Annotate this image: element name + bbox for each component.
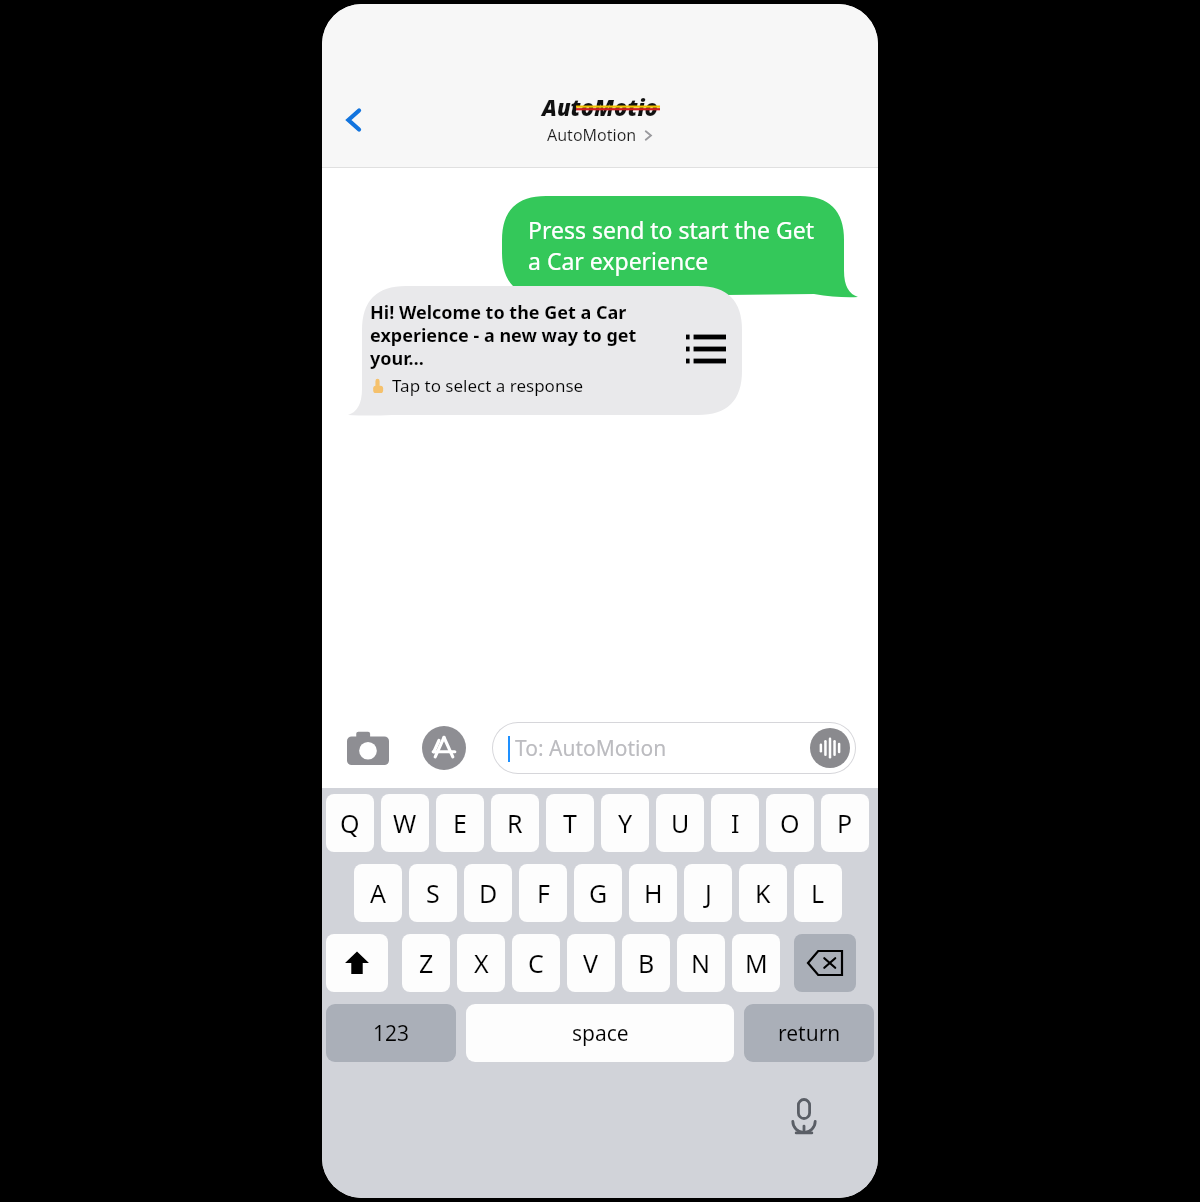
staticText: I <box>731 806 740 840</box>
button[interactable]: B <box>622 934 670 992</box>
button[interactable]: M <box>732 934 780 992</box>
staticText: O <box>780 806 800 840</box>
button[interactable]: Apps <box>420 724 468 772</box>
staticText: C <box>528 946 544 980</box>
staticText: U <box>671 806 690 840</box>
staticText: return <box>778 1019 841 1048</box>
button[interactable]: 123 <box>326 1004 456 1062</box>
staticText: S <box>426 876 440 910</box>
staticText: Press send to start the Get a Car experi… <box>528 214 828 277</box>
staticText: Tap to select a response <box>392 374 584 397</box>
button[interactable]: N <box>677 934 725 992</box>
button[interactable]: R <box>491 794 539 852</box>
staticText: H <box>644 876 663 910</box>
button[interactable]: Camera <box>344 724 392 772</box>
button[interactable]: O <box>766 794 814 852</box>
button[interactable]: space <box>466 1004 734 1062</box>
button[interactable]: K <box>739 864 787 922</box>
button[interactable]: Dictation <box>780 1093 828 1141</box>
button[interactable]: P <box>821 794 869 852</box>
staticText: AutoMotion <box>547 124 637 146</box>
staticText: P <box>837 806 853 840</box>
button[interactable]: E <box>436 794 484 852</box>
staticText: M <box>745 946 768 980</box>
staticText: To: AutoMotion <box>515 734 667 763</box>
button[interactable]: T <box>546 794 594 852</box>
staticText: Hi! Welcome to the Get a Car experience … <box>370 300 676 370</box>
button[interactable]: X <box>457 934 505 992</box>
staticText: V <box>583 946 599 980</box>
button[interactable]: To: AutoMotion <box>492 722 856 774</box>
button[interactable]: Y <box>601 794 649 852</box>
button[interactable]: Shift <box>326 934 388 992</box>
button[interactable]: return <box>744 1004 874 1062</box>
staticText: B <box>638 946 655 980</box>
staticText: G <box>589 876 608 910</box>
staticText: T <box>563 806 577 840</box>
button[interactable]: Z <box>402 934 450 992</box>
staticText: R <box>507 806 523 840</box>
staticText: A <box>370 876 386 910</box>
button[interactable]: L <box>794 864 842 922</box>
staticText: L <box>811 876 825 910</box>
button[interactable]: W <box>381 794 429 852</box>
button[interactable]: I <box>711 794 759 852</box>
staticText: J <box>705 876 712 910</box>
button[interactable]: A <box>354 864 402 922</box>
staticText: K <box>755 876 771 910</box>
button[interactable]: C <box>512 934 560 992</box>
staticText: Y <box>618 806 633 840</box>
staticText: Z <box>419 946 434 980</box>
staticText: F <box>537 876 550 910</box>
button[interactable]: J <box>684 864 732 922</box>
button[interactable]: F <box>519 864 567 922</box>
staticText: Q <box>340 806 360 840</box>
staticText: space <box>572 1019 629 1048</box>
button[interactable]: H <box>629 864 677 922</box>
button[interactable]: S <box>409 864 457 922</box>
staticText: E <box>453 806 467 840</box>
button[interactable]: Press send to start the Get a Car experi… <box>502 196 858 297</box>
button[interactable]: Back <box>330 96 378 144</box>
button[interactable]: Backspace <box>794 934 856 992</box>
button[interactable]: AutoMotion <box>540 92 660 146</box>
button[interactable]: G <box>574 864 622 922</box>
button[interactable]: Q <box>326 794 374 852</box>
button[interactable]: D <box>464 864 512 922</box>
staticText: D <box>479 876 498 910</box>
button[interactable]: Hi! Welcome to the Get a Car experience … <box>348 286 742 415</box>
button[interactable]: V <box>567 934 615 992</box>
button[interactable]: Audio message <box>809 727 851 769</box>
staticText: N <box>691 946 711 980</box>
staticText: W <box>393 806 417 840</box>
staticText: 123 <box>373 1019 410 1048</box>
staticText: AutoMotion <box>540 92 660 118</box>
staticText: X <box>474 946 489 980</box>
button[interactable]: U <box>656 794 704 852</box>
